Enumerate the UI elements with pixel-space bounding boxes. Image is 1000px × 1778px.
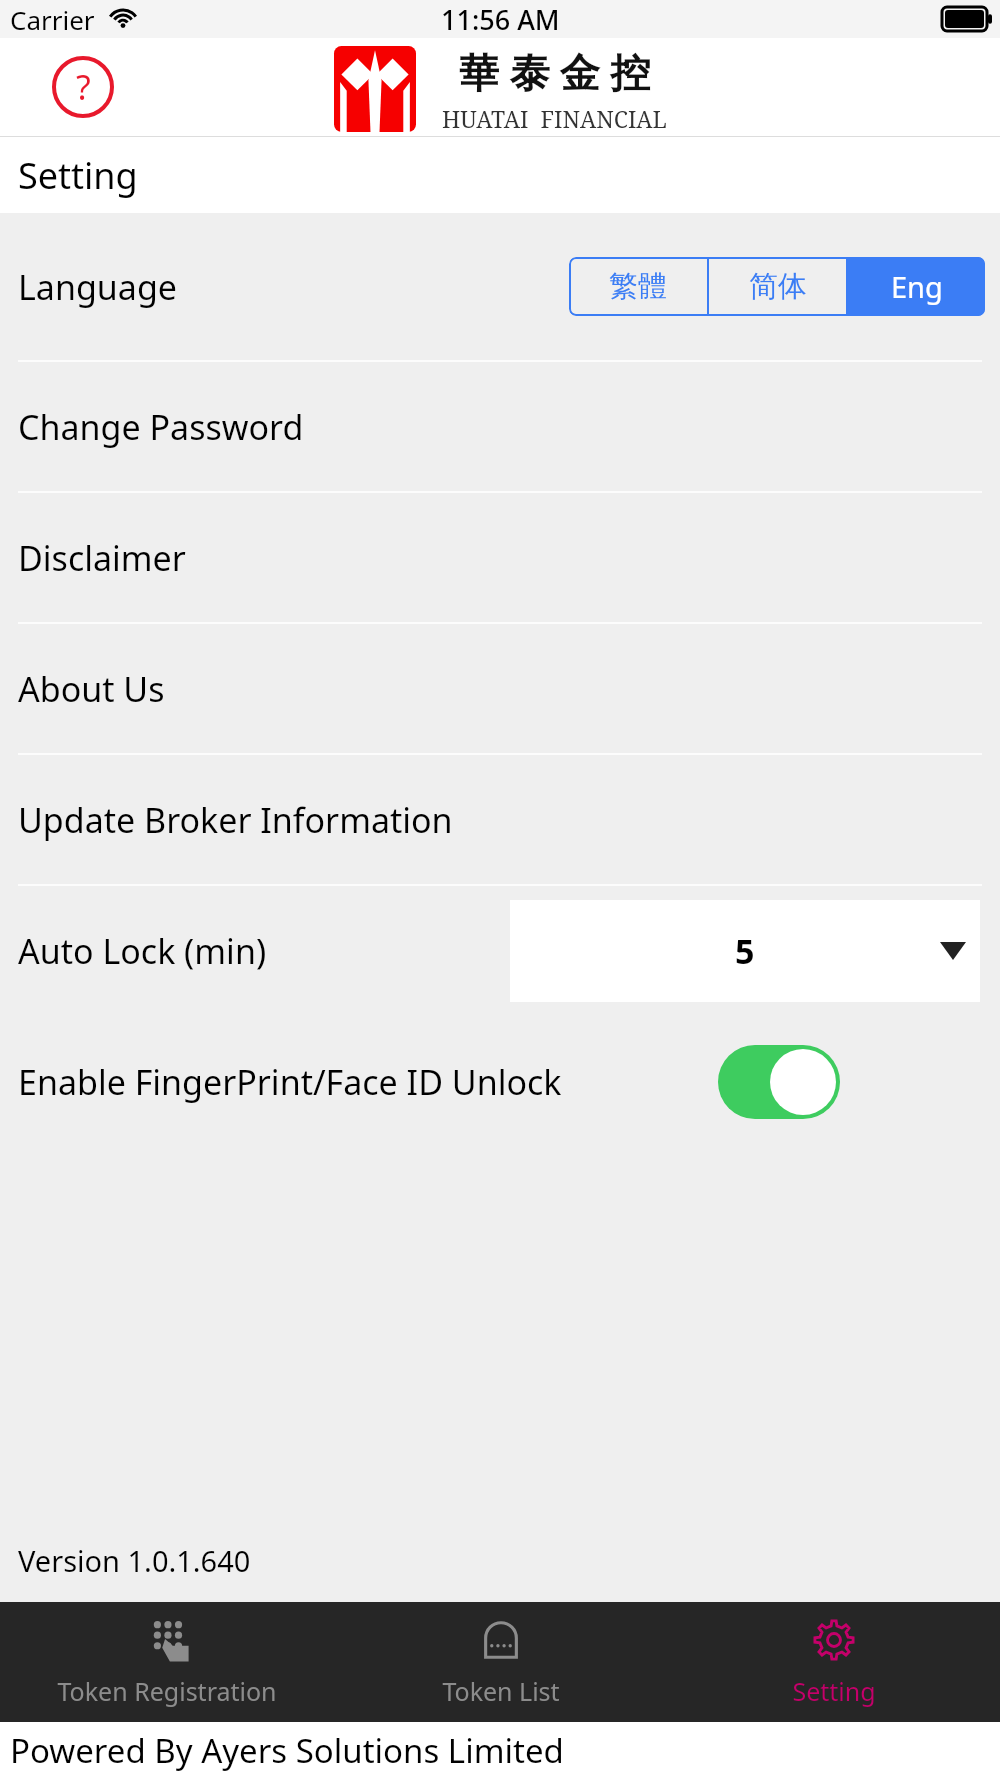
staticText: 11:56 AM bbox=[441, 1, 560, 38]
staticText: ? bbox=[76, 64, 91, 110]
staticText: 繁體 bbox=[609, 268, 667, 305]
button[interactable]: Disclaimer bbox=[0, 493, 1000, 622]
staticText: 5 bbox=[735, 928, 755, 974]
button[interactable]: Update Broker Information bbox=[0, 755, 1000, 884]
button[interactable]: Token Registration bbox=[0, 1602, 334, 1722]
button[interactable]: Enable FingerPrint or Face ID Unlock tog… bbox=[718, 1045, 840, 1119]
staticText: Enable FingerPrint/Face ID Unlock bbox=[18, 1059, 562, 1105]
staticText: Setting bbox=[792, 1674, 876, 1708]
staticText: Setting bbox=[18, 151, 138, 200]
button[interactable]: 简体 bbox=[709, 257, 846, 316]
staticText: HUATAI FINANCIAL bbox=[442, 103, 667, 134]
staticText: Token Registration bbox=[57, 1674, 277, 1708]
staticText: Powered By Ayers Solutions Limited bbox=[10, 1728, 564, 1773]
staticText: Change Password bbox=[18, 404, 304, 450]
staticText: Carrier bbox=[10, 2, 95, 37]
button[interactable]: Token List bbox=[334, 1602, 667, 1722]
staticText: Update Broker Information bbox=[18, 797, 453, 843]
staticText: Token List bbox=[442, 1674, 560, 1708]
staticText: Version 1.0.1.640 bbox=[18, 1541, 251, 1580]
staticText: 華 泰 金 控 bbox=[459, 44, 651, 99]
staticText: Eng bbox=[891, 267, 943, 306]
button[interactable]: Help bbox=[52, 56, 114, 118]
button[interactable]: About Us bbox=[0, 624, 1000, 753]
staticText: Language bbox=[18, 264, 177, 310]
button[interactable]: 繁體 bbox=[569, 257, 707, 316]
button[interactable]: Eng bbox=[848, 257, 985, 316]
button[interactable]: Setting bbox=[667, 1602, 1000, 1722]
staticText: Auto Lock (min) bbox=[18, 928, 267, 974]
staticText: 简体 bbox=[749, 268, 807, 305]
button[interactable]: 5 bbox=[510, 900, 980, 1002]
staticText: About Us bbox=[18, 666, 165, 712]
button[interactable]: Change Password bbox=[0, 362, 1000, 491]
staticText: Disclaimer bbox=[18, 535, 186, 581]
